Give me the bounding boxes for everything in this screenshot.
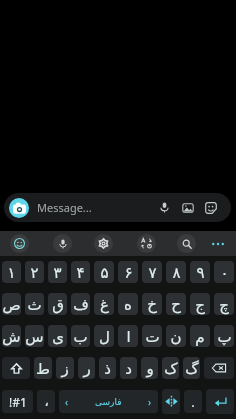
staticText: ح (171, 296, 181, 313)
button[interactable]: ل (94, 325, 114, 347)
staticText: م (195, 328, 205, 345)
staticText: ک (164, 360, 178, 377)
button[interactable]: ف (71, 293, 90, 315)
button[interactable]: Voice message (154, 197, 175, 218)
button[interactable]: ق (48, 293, 67, 315)
staticText: ۲ (30, 264, 39, 281)
staticText: ش (2, 328, 21, 345)
button[interactable]: ی (48, 325, 67, 347)
staticText: چ (219, 296, 229, 313)
staticText: ۴ (76, 264, 85, 281)
button[interactable]: More options (207, 233, 229, 255)
staticText: ل (99, 328, 110, 345)
button[interactable]: خ (142, 293, 162, 315)
button[interactable]: Stickers (200, 197, 221, 218)
staticText: ر (83, 360, 91, 377)
button[interactable]: ج (190, 293, 210, 315)
staticText: ت (145, 328, 160, 345)
staticText: !#1 (9, 394, 27, 410)
staticText: د (125, 360, 132, 377)
button[interactable]: Camera (9, 198, 29, 218)
button[interactable]: ش (2, 325, 21, 347)
staticText: ۰ (220, 264, 229, 281)
button[interactable]: ه (118, 293, 138, 315)
button[interactable]: ر (78, 357, 95, 379)
button[interactable]: !#1 (2, 390, 33, 413)
staticText: › (148, 395, 152, 409)
staticText: ط (36, 360, 50, 377)
button[interactable]: غ (94, 293, 114, 315)
button[interactable]: Search (177, 234, 196, 253)
staticText: ز (61, 360, 69, 377)
staticText: ج (195, 296, 205, 313)
button[interactable]: ۷ (142, 261, 162, 283)
button[interactable]: گ (183, 357, 200, 379)
staticText: ا (126, 328, 131, 345)
staticText: ، (44, 394, 49, 409)
staticText: ی (52, 328, 64, 345)
staticText: ۹ (196, 264, 205, 281)
button[interactable]: و (141, 357, 158, 379)
button[interactable]: ص (2, 293, 21, 315)
button[interactable]: ۴ (71, 261, 90, 283)
staticText: ۱ (7, 264, 16, 281)
button[interactable]: Emoji (10, 234, 29, 253)
staticText: فارسی (95, 397, 122, 407)
staticText: و (146, 360, 154, 377)
button[interactable]: Voice typing (53, 234, 72, 253)
staticText: س (25, 328, 44, 345)
button[interactable]: ت (142, 325, 162, 347)
staticText: ‹ (65, 395, 69, 409)
button[interactable]: ، (37, 390, 55, 413)
button[interactable]: ۸ (166, 261, 186, 283)
button[interactable]: ح (166, 293, 186, 315)
button[interactable]: ب (71, 325, 90, 347)
button[interactable]: ۰ (214, 261, 234, 283)
button[interactable]: ز (56, 357, 74, 379)
button[interactable]: ‹ (59, 390, 158, 413)
button[interactable]: ث (25, 293, 44, 315)
button[interactable]: پ (214, 325, 234, 347)
button[interactable]: ۵ (94, 261, 114, 283)
button[interactable]: Camera (4, 193, 231, 222)
button[interactable]: Enter (206, 389, 234, 414)
button[interactable]: Translate (137, 234, 156, 253)
button[interactable]: چ (214, 293, 234, 315)
staticText: ذ (104, 360, 111, 377)
staticText: غ (100, 296, 109, 313)
button[interactable]: ک (162, 357, 179, 379)
staticText: ۶ (124, 264, 133, 281)
staticText: ه (124, 296, 132, 313)
button[interactable]: Backspace (204, 357, 234, 379)
staticText: ب (73, 328, 88, 345)
button[interactable]: ط (34, 357, 52, 379)
staticText: ۷ (148, 264, 157, 281)
staticText: ص (2, 296, 21, 313)
staticText: ف (73, 296, 89, 313)
button[interactable]: ۳ (48, 261, 67, 283)
button[interactable]: . (184, 390, 202, 413)
staticText: ۵ (100, 264, 109, 281)
staticText: . (191, 393, 195, 411)
button[interactable]: ۹ (190, 261, 210, 283)
button[interactable]: Switch direction (162, 389, 180, 414)
button[interactable]: Gallery (177, 197, 198, 218)
staticText: Message... (37, 200, 92, 215)
button[interactable]: Settings (94, 234, 113, 253)
staticText: ن (170, 328, 182, 345)
button[interactable]: ذ (99, 357, 116, 379)
staticText: پ (217, 328, 232, 345)
staticText: ث (27, 296, 42, 313)
staticText: ۸ (172, 264, 181, 281)
button[interactable]: ۱ (2, 261, 21, 283)
staticText: خ (147, 296, 157, 313)
button[interactable]: Shift (2, 357, 30, 379)
button[interactable]: ۲ (25, 261, 44, 283)
button[interactable]: ا (118, 325, 138, 347)
button[interactable]: ن (166, 325, 186, 347)
button[interactable]: د (120, 357, 137, 379)
button[interactable]: ۶ (118, 261, 138, 283)
button[interactable]: س (25, 325, 44, 347)
staticText: گ (185, 360, 199, 377)
button[interactable]: م (190, 325, 210, 347)
